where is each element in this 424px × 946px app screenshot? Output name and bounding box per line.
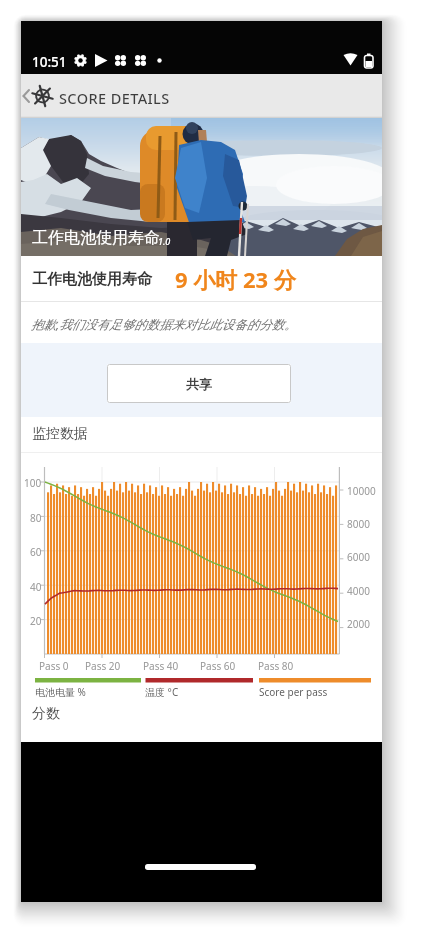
staticText: 8000 bbox=[347, 517, 370, 531]
staticText: SCORE DETAILS bbox=[59, 88, 170, 108]
staticText: 分数 bbox=[32, 705, 60, 723]
staticText: 监控数据 bbox=[32, 425, 88, 443]
staticText: 共享 bbox=[186, 376, 212, 392]
staticText: 9 小时 23 分 bbox=[175, 264, 296, 294]
staticText: 6000 bbox=[347, 550, 370, 564]
staticText: 10:51 bbox=[32, 53, 67, 71]
staticText: 4000 bbox=[347, 584, 370, 598]
staticText: Pass 80 bbox=[258, 659, 294, 673]
staticText: 80 bbox=[30, 511, 42, 525]
staticText: 1.0 bbox=[158, 235, 171, 247]
staticText: 2000 bbox=[347, 617, 370, 631]
staticText: 电池电量 % bbox=[35, 685, 86, 699]
staticText: 40 bbox=[30, 580, 42, 594]
staticText: Pass 0 bbox=[39, 659, 69, 673]
staticText: 100 bbox=[24, 476, 42, 490]
staticText: Score per pass bbox=[259, 685, 328, 699]
button[interactable] bbox=[145, 864, 256, 870]
staticText: 温度 °C bbox=[145, 685, 179, 699]
staticText: Pass 40 bbox=[143, 659, 179, 673]
button[interactable] bbox=[21, 74, 141, 118]
staticText: 工作电池使用寿命 bbox=[32, 270, 152, 289]
staticText: 10000 bbox=[347, 484, 376, 498]
staticText: 工作电池使用寿命 bbox=[32, 228, 160, 248]
staticText: Pass 60 bbox=[200, 659, 236, 673]
staticText: 抱歉,我们没有足够的数据来对比此设备的分数。 bbox=[31, 316, 297, 333]
staticText: Pass 20 bbox=[85, 659, 121, 673]
button[interactable]: 共享 bbox=[107, 364, 291, 403]
staticText: 20 bbox=[30, 614, 42, 628]
staticText: 60 bbox=[30, 545, 42, 559]
